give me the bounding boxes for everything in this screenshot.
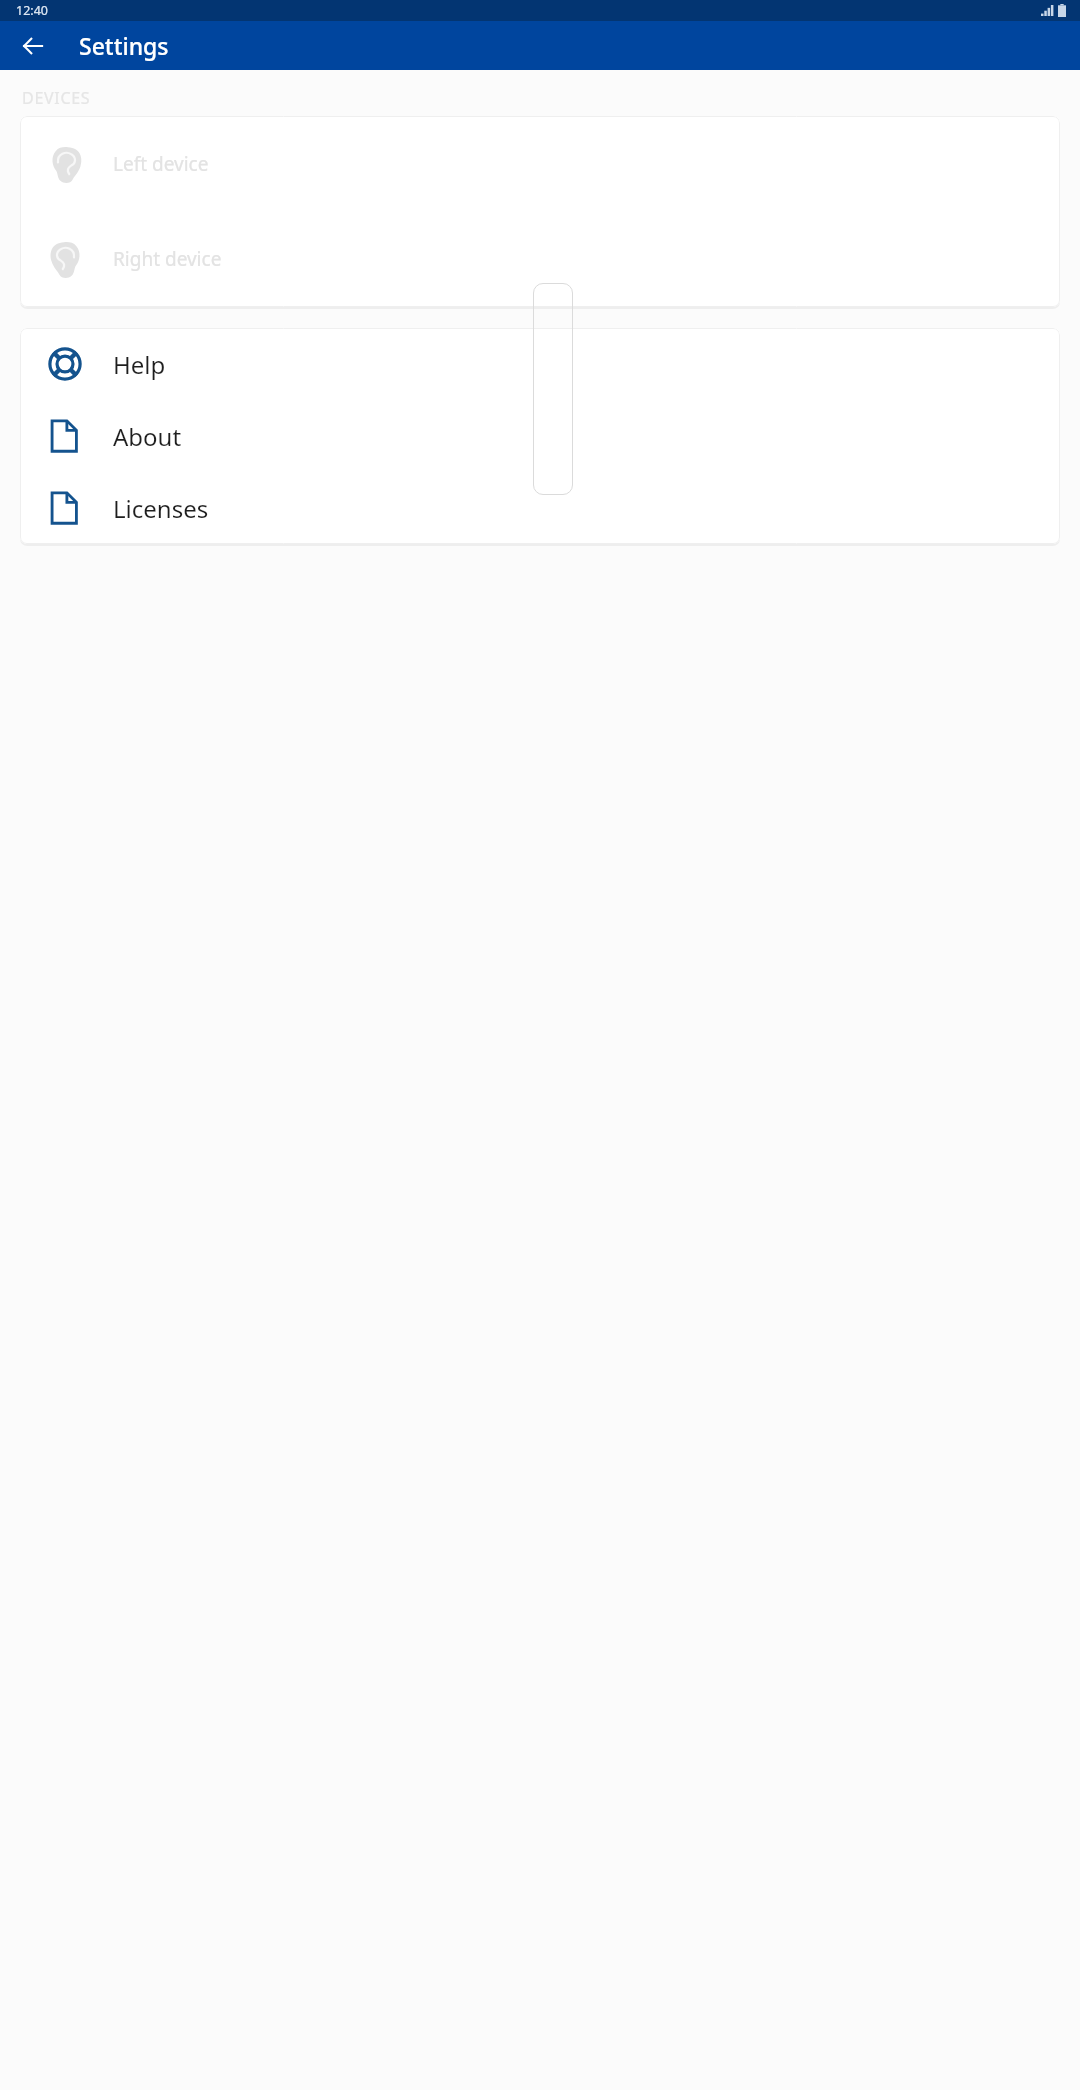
button[interactable]: Back xyxy=(10,23,56,69)
button[interactable]: Help xyxy=(20,328,1060,400)
staticText: Licenses xyxy=(113,492,209,525)
button[interactable]: Right device xyxy=(20,211,1060,306)
staticText: 12:40 xyxy=(16,2,48,19)
staticText: DEVICES xyxy=(22,87,91,109)
button[interactable]: Licenses xyxy=(20,472,1060,544)
button[interactable]: About xyxy=(20,400,1060,472)
button[interactable]: Left device xyxy=(20,116,1060,211)
staticText: Left device xyxy=(113,151,209,177)
staticText: About xyxy=(113,420,182,453)
staticText: Right device xyxy=(113,246,222,272)
staticText: Settings xyxy=(79,30,169,61)
staticText: Help xyxy=(113,348,166,381)
